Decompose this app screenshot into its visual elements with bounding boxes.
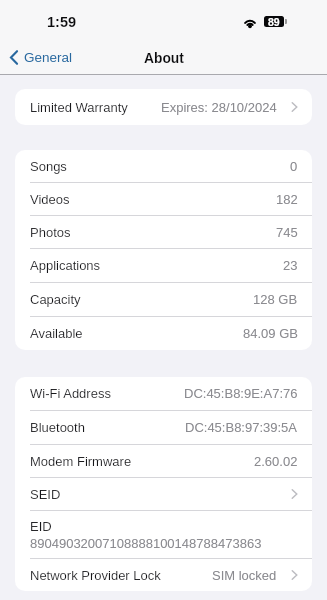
- staticText: SIM locked: [212, 568, 277, 583]
- staticText: 89: [268, 16, 280, 26]
- button[interactable]: Network Provider Lock: [15, 559, 312, 591]
- other: Wi-Fi: [243, 17, 257, 27]
- staticText: 2.60.02: [254, 454, 298, 469]
- staticText: Wi-Fi Address: [30, 386, 111, 401]
- other: Battery 89 percent: [264, 16, 287, 27]
- button[interactable]: Limited Warranty: [15, 89, 312, 125]
- button[interactable]: Capacity: [15, 283, 312, 316]
- staticText: SEID: [30, 487, 61, 502]
- staticText: 0: [290, 159, 298, 174]
- button[interactable]: Applications: [15, 249, 312, 282]
- button[interactable]: Bluetooth: [15, 411, 312, 444]
- button[interactable]: Wi-Fi Address: [15, 377, 312, 410]
- staticText: 745: [276, 225, 298, 240]
- staticText: About: [144, 51, 184, 66]
- staticText: 1:59: [47, 14, 77, 30]
- staticText: Limited Warranty: [30, 100, 128, 115]
- staticText: Modem Firmware: [30, 454, 132, 469]
- button[interactable]: Songs: [15, 150, 312, 182]
- staticText: Bluetooth: [30, 420, 85, 435]
- staticText: 23: [283, 258, 298, 273]
- staticText: DC:45:B8:9E:A7:76: [184, 386, 298, 401]
- staticText: EID: [30, 519, 52, 534]
- button[interactable]: General: [0, 38, 83, 70]
- staticText: General: [24, 50, 73, 65]
- staticText: DC:45:B8:97:39:5A: [185, 420, 298, 435]
- button[interactable]: Videos: [15, 183, 312, 215]
- staticText: Applications: [30, 258, 101, 273]
- staticText: 128 GB: [253, 292, 298, 307]
- staticText: Capacity: [30, 292, 81, 307]
- button[interactable]: SEID: [15, 478, 312, 510]
- staticText: Songs: [30, 159, 67, 174]
- button[interactable]: Modem Firmware: [15, 445, 312, 477]
- button[interactable]: EID: [15, 511, 312, 558]
- staticText: 89049032007108888100148788473863: [30, 536, 262, 551]
- staticText: 84.09 GB: [243, 326, 298, 341]
- staticText: Expires: 28/10/2024: [161, 100, 277, 115]
- staticText: Network Provider Lock: [30, 568, 161, 583]
- button[interactable]: Photos: [15, 216, 312, 248]
- staticText: Photos: [30, 225, 71, 240]
- staticText: Videos: [30, 192, 70, 207]
- staticText: 182: [276, 192, 298, 207]
- button[interactable]: Available: [15, 317, 312, 350]
- staticText: Available: [30, 326, 83, 341]
